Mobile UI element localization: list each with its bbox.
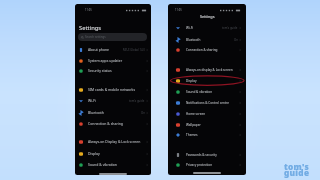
button[interactable]: Sound & vibration <box>75 159 151 170</box>
staticText: On <box>234 38 238 42</box>
staticText: SIM cards & mobile networks <box>88 87 136 92</box>
staticText: Search settings <box>85 35 106 39</box>
staticText: Display <box>186 79 197 83</box>
button[interactable]: Search settings <box>78 33 147 41</box>
staticText: System apps updater <box>88 58 123 63</box>
button[interactable]: Wallpaper <box>168 119 246 130</box>
button[interactable]: Connection & sharing <box>75 118 151 129</box>
staticText: Sound & vibration <box>186 90 213 94</box>
button[interactable]: About phone <box>75 44 151 55</box>
staticText: Themes <box>186 133 198 137</box>
staticText: Always-on display & Lock screen <box>186 68 233 72</box>
staticText: Always-on Display & Lock screen <box>88 139 141 144</box>
staticText: On <box>141 111 145 115</box>
button[interactable]: Always-on Display & Lock screen <box>75 136 151 147</box>
button[interactable]: Display <box>75 148 151 159</box>
staticText: Security status <box>88 68 112 73</box>
button[interactable]: Privacy protection <box>168 159 246 170</box>
staticText: About phone <box>88 47 110 52</box>
staticText: Settings <box>79 24 102 32</box>
staticText: Notifications & Control centre <box>186 101 230 105</box>
staticText: Home screen <box>186 112 206 116</box>
staticText: Passwords & security <box>186 153 217 157</box>
button[interactable]: Security status <box>75 65 151 76</box>
staticText: Settings <box>200 14 215 19</box>
staticText: Wi-Fi <box>186 26 194 30</box>
button[interactable]: Passwords & security <box>168 149 246 160</box>
staticText: tom's guide <box>284 161 310 178</box>
staticText: Sound & vibration <box>88 162 117 167</box>
staticText: 11:05 <box>175 8 182 12</box>
button[interactable]: Always-on display & Lock screen <box>168 64 246 75</box>
staticText: 11:05 <box>85 8 92 12</box>
staticText: Wallpaper <box>186 123 201 127</box>
button[interactable]: Wi-Fi <box>168 22 246 33</box>
staticText: Wi-Fi <box>88 98 96 103</box>
button[interactable]: Themes <box>168 129 246 140</box>
button[interactable]: Connection & sharing <box>168 44 246 55</box>
button[interactable]: Bluetooth <box>75 107 151 118</box>
staticText: Connection & sharing <box>186 48 218 52</box>
button[interactable]: Notifications & Control centre <box>168 97 246 108</box>
button[interactable]: Home screen <box>168 108 246 119</box>
staticText: MIUI Global 14.0 <box>123 48 145 52</box>
staticText: Bluetooth <box>88 110 104 115</box>
staticText: tom's guide <box>129 99 145 103</box>
button[interactable]: Wi-Fi <box>75 95 151 106</box>
button[interactable]: Bluetooth <box>168 34 246 45</box>
staticText: Connection & sharing <box>88 121 123 126</box>
staticText: Bluetooth <box>186 38 201 42</box>
button[interactable]: Display <box>168 75 246 86</box>
button[interactable]: System apps updater <box>75 55 151 66</box>
button[interactable]: SIM cards & mobile networks <box>75 84 151 95</box>
staticText: tom's guide <box>222 26 238 30</box>
staticText: Display <box>88 151 100 156</box>
staticText: Privacy protection <box>186 163 213 167</box>
button[interactable]: Sound & vibration <box>168 86 246 97</box>
